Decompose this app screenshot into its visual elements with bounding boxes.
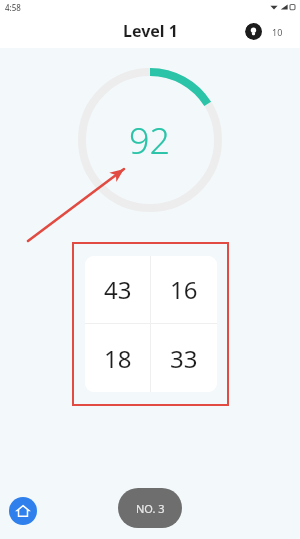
button[interactable]: Hints: 10 xyxy=(245,23,292,40)
button[interactable]: 33 xyxy=(151,324,217,392)
button[interactable]: Home xyxy=(9,497,37,525)
staticText: 16 xyxy=(170,273,198,306)
staticText: Level 1 xyxy=(123,20,178,42)
button[interactable]: 43 xyxy=(85,256,150,323)
staticText: 43 xyxy=(104,273,132,306)
staticText: 92 xyxy=(129,116,171,165)
staticText: 10 xyxy=(272,26,283,38)
staticText: 18 xyxy=(104,342,132,375)
staticText: 4:58 xyxy=(5,2,21,13)
staticText: NO. 3 xyxy=(136,501,165,516)
staticText: 33 xyxy=(170,342,198,375)
button[interactable]: 16 xyxy=(151,256,217,323)
button[interactable]: NO. 3 xyxy=(118,488,182,528)
button[interactable]: 18 xyxy=(85,324,150,392)
